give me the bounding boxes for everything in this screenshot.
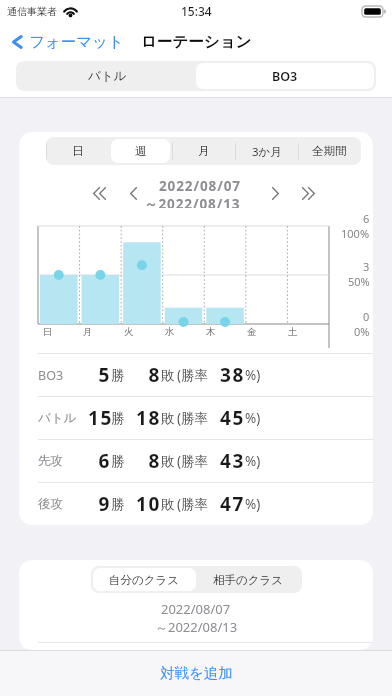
staticText: ローテーション: [141, 32, 252, 52]
staticText: ～2022/08/13: [155, 618, 238, 636]
staticText: 勝: [111, 367, 125, 384]
staticText: 月: [198, 144, 210, 158]
staticText: 敗: [161, 367, 175, 384]
staticText: 0: [363, 309, 370, 324]
staticText: 日: [43, 326, 53, 338]
staticText: 10: [136, 491, 161, 517]
staticText: 勝: [111, 496, 125, 513]
button[interactable]: 後攻: [19, 483, 373, 525]
staticText: 50%: [348, 274, 370, 289]
staticText: 勝: [111, 410, 125, 427]
staticText: BO3: [38, 367, 88, 384]
staticText: (勝率: [177, 409, 209, 427]
staticText: 38: [220, 362, 245, 388]
button[interactable]: 日: [48, 139, 107, 163]
button[interactable]: Next: [268, 182, 282, 204]
button[interactable]: バトル: [18, 63, 196, 89]
button[interactable]: 自分のクラス: [93, 568, 196, 591]
staticText: 2022/08/07: [161, 600, 231, 618]
staticText: 日: [72, 144, 84, 158]
staticText: 通信事業者: [7, 5, 57, 18]
staticText: 自分のクラス: [109, 573, 180, 587]
staticText: 相手のクラス: [213, 573, 284, 587]
staticText: %): [245, 452, 261, 470]
staticText: (勝率: [177, 495, 209, 513]
staticText: 水: [165, 326, 175, 338]
staticText: 8: [136, 362, 161, 388]
staticText: 18: [136, 405, 161, 431]
staticText: 6: [88, 448, 111, 474]
button[interactable]: 全期間: [300, 139, 359, 163]
staticText: 金: [247, 326, 257, 338]
button[interactable]: BO3: [19, 354, 373, 396]
button[interactable]: 対戦を追加: [138, 655, 255, 691]
staticText: 9: [88, 491, 111, 517]
staticText: 2022/08/07: [159, 177, 241, 195]
staticText: %): [245, 409, 261, 427]
staticText: バトル: [38, 410, 88, 426]
staticText: 3: [363, 259, 370, 274]
staticText: 敗: [161, 453, 175, 470]
button[interactable]: 週: [111, 139, 170, 163]
button[interactable]: 3か月: [237, 139, 296, 163]
staticText: 45: [220, 405, 245, 431]
staticText: 8: [136, 448, 161, 474]
staticText: 6: [363, 211, 370, 226]
button[interactable]: Previous: [126, 182, 140, 204]
staticText: 先攻: [38, 453, 88, 469]
staticText: 5: [88, 362, 111, 388]
button[interactable]: 相手のクラス: [196, 568, 300, 591]
button[interactable]: 先攻: [19, 440, 373, 482]
staticText: フォーマット: [29, 32, 124, 52]
staticText: BO3: [272, 68, 298, 85]
staticText: 0%: [354, 324, 370, 339]
staticText: 47: [220, 491, 245, 517]
staticText: ～2022/08/13: [144, 195, 241, 208]
staticText: 月: [83, 326, 93, 338]
staticText: 15:34: [181, 3, 212, 19]
staticText: 火: [124, 326, 134, 338]
button[interactable]: 月: [174, 139, 233, 163]
staticText: 土: [288, 326, 298, 338]
staticText: %): [245, 495, 261, 513]
staticText: 対戦を追加: [160, 664, 233, 682]
staticText: 後攻: [38, 496, 88, 512]
button[interactable]: BO3: [196, 63, 374, 89]
staticText: 43: [220, 448, 245, 474]
staticText: 週: [135, 144, 147, 158]
staticText: 敗: [161, 496, 175, 513]
button[interactable]: フォーマット: [8, 27, 126, 57]
staticText: %): [245, 366, 261, 384]
staticText: 100%: [341, 226, 370, 241]
staticText: 3か月: [252, 144, 282, 158]
staticText: バトル: [88, 68, 127, 84]
staticText: (勝率: [177, 366, 209, 384]
button[interactable]: Last: [299, 182, 317, 204]
staticText: 敗: [161, 410, 175, 427]
staticText: 木: [206, 326, 216, 338]
staticText: 勝: [111, 453, 125, 470]
staticText: (勝率: [177, 452, 209, 470]
button[interactable]: First: [90, 182, 108, 204]
staticText: 15: [88, 405, 111, 431]
staticText: 全期間: [312, 144, 347, 158]
button[interactable]: バトル: [19, 397, 373, 439]
